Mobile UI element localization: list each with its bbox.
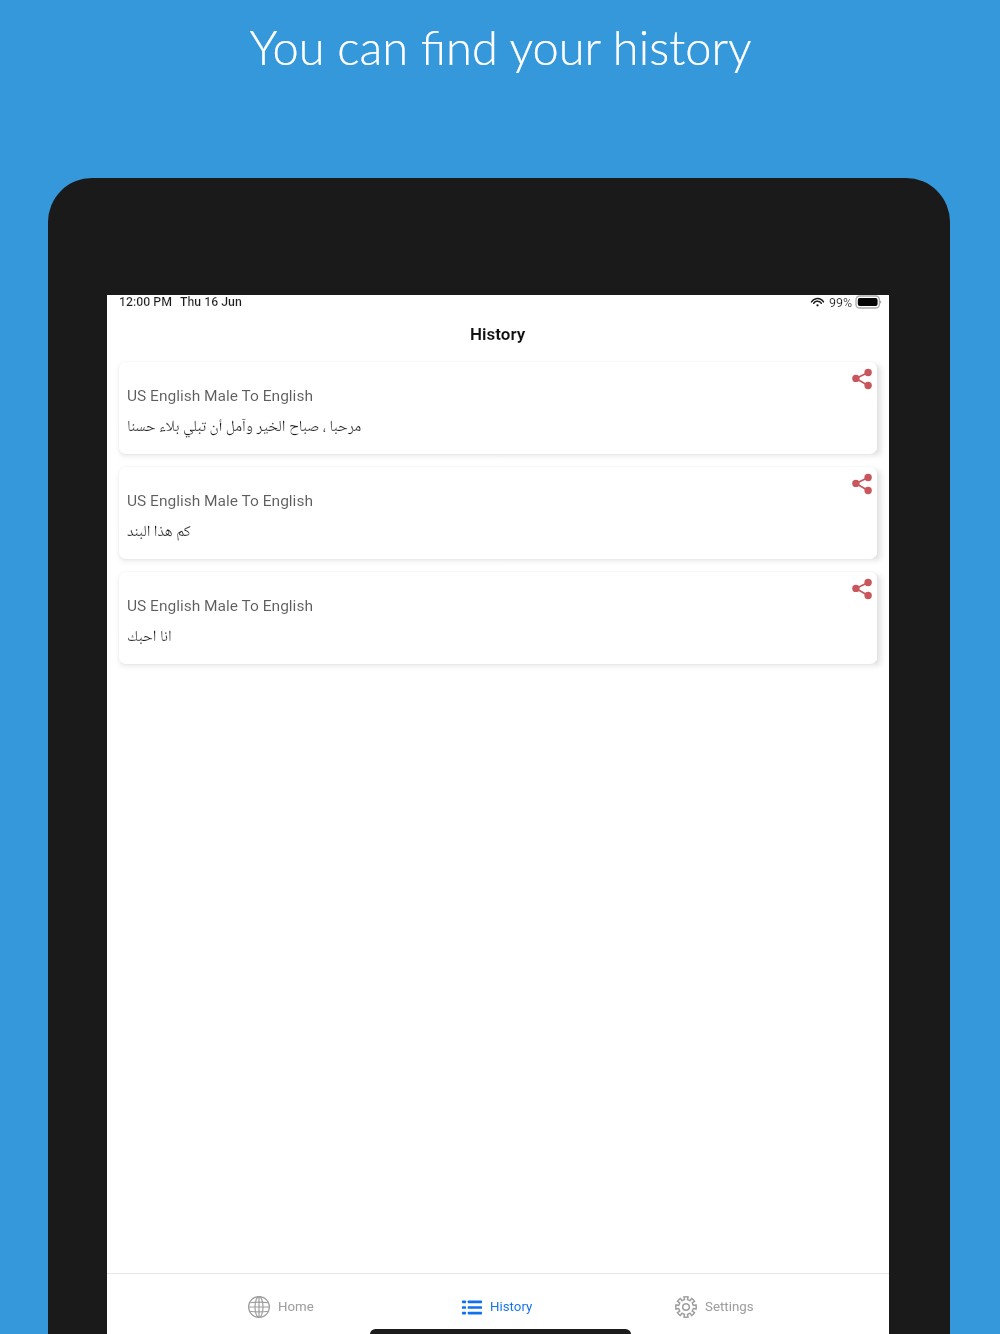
staticText: Thu 16 Jun [180, 295, 242, 308]
staticText: Home [278, 1299, 314, 1315]
button[interactable]: Home [173, 1296, 389, 1318]
staticText: US English Male To English [127, 597, 313, 615]
staticText: انا احبك [127, 626, 172, 647]
button[interactable]: History [389, 1299, 606, 1315]
button[interactable]: Settings [606, 1296, 823, 1318]
staticText: US English Male To English [127, 492, 313, 510]
staticText: مرحبا ، صباح الخير وآمل أن تبلي بلاء حسن… [127, 416, 362, 437]
button[interactable]: US English Male To English [119, 362, 877, 454]
staticText: كم هذا البند [127, 521, 191, 542]
staticText: Settings [705, 1299, 754, 1315]
button[interactable]: Share [849, 576, 875, 602]
button[interactable]: Share [849, 366, 875, 392]
staticText: History [490, 1299, 533, 1315]
button[interactable]: Share [849, 471, 875, 497]
staticText: You can find your history [249, 19, 752, 75]
button[interactable]: US English Male To English [119, 467, 877, 559]
staticText: 12:00 PM [119, 295, 172, 308]
staticText: 99% [829, 295, 853, 308]
staticText: History [470, 324, 526, 344]
staticText: US English Male To English [127, 387, 313, 405]
button[interactable]: US English Male To English [119, 572, 877, 664]
